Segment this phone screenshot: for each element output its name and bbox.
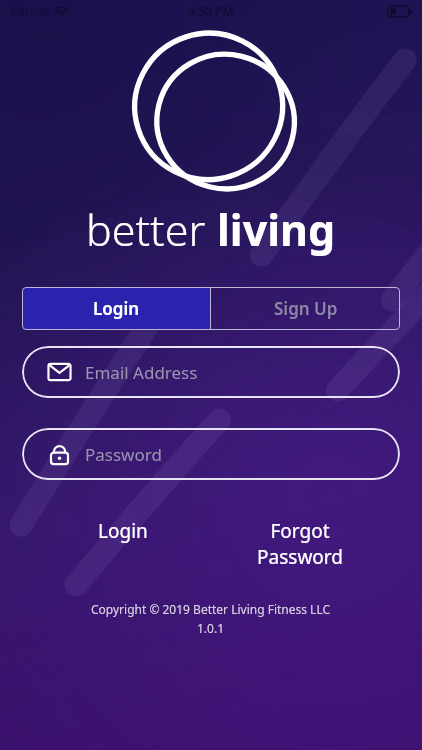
staticText: Carrier — [11, 3, 51, 19]
staticText: 1.0.1 — [197, 620, 225, 636]
button[interactable]: Password — [22, 428, 400, 480]
staticText: Password — [85, 443, 162, 466]
staticText: living — [217, 200, 336, 259]
staticText: Login — [93, 297, 140, 320]
button[interactable]: Login — [22, 287, 210, 330]
staticText: Sign Up — [274, 297, 338, 320]
staticText: Login — [98, 518, 148, 544]
button[interactable]: Email Address — [22, 346, 400, 398]
staticText: Forgot Password — [245, 518, 355, 569]
staticText: better — [86, 200, 217, 259]
button[interactable]: Sign Up — [211, 287, 400, 330]
button[interactable]: Login — [34, 514, 211, 548]
button[interactable]: Forgot Password — [211, 514, 388, 573]
staticText: 9:50 PM — [188, 3, 234, 19]
staticText: Email Address — [85, 361, 198, 384]
staticText: Copyright © 2019 Better Living Fitness L… — [91, 601, 331, 617]
